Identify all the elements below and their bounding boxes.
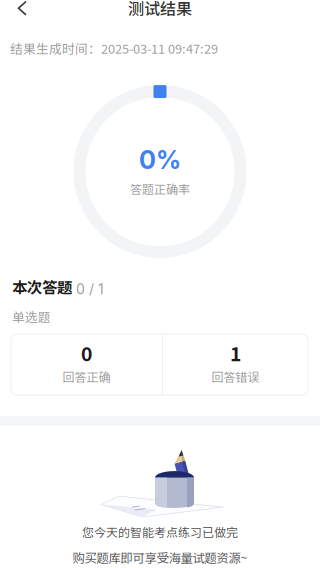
staticText: 本次答题 — [12, 275, 72, 298]
staticText: 测试结果 — [128, 0, 192, 20]
staticText: 您今天的智能考点练习已做完 — [82, 523, 238, 540]
staticText: 回答错误 — [211, 368, 259, 385]
staticText: 单选题 — [12, 307, 51, 325]
staticText: 0 / 1 — [76, 281, 104, 298]
staticText: 0 — [81, 339, 92, 367]
staticText: 1 — [230, 339, 241, 367]
staticText: 回答正确 — [62, 368, 110, 385]
button[interactable]: Back — [0, 0, 40, 16]
staticText: 0% — [139, 144, 181, 175]
staticText: 结果生成时间：2025-03-11 09:47:29 — [10, 39, 218, 57]
staticText: 购买题库即可享受海量试题资源~ — [72, 548, 247, 566]
staticText: 答题正确率 — [130, 180, 190, 198]
